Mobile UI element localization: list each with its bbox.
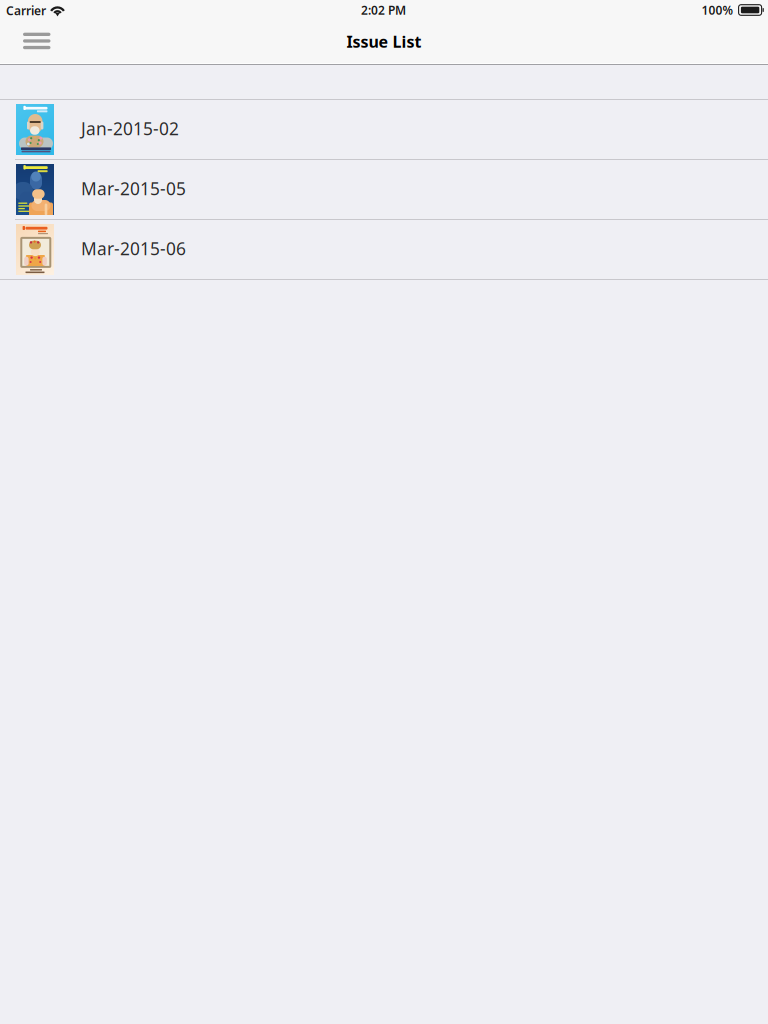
staticText: Mar-2015-06 bbox=[81, 237, 186, 260]
staticText: Carrier bbox=[6, 2, 46, 18]
button[interactable]: Menu bbox=[13, 20, 60, 62]
staticText: Mar-2015-05 bbox=[81, 177, 186, 200]
staticText: Issue List bbox=[346, 31, 421, 52]
staticText: 2:02 PM bbox=[361, 2, 406, 18]
button[interactable]: Jan-2015-02 bbox=[0, 100, 768, 160]
staticText: 100% bbox=[702, 2, 734, 18]
button[interactable]: Mar-2015-05 bbox=[0, 160, 768, 220]
staticText: Jan-2015-02 bbox=[81, 117, 179, 140]
button[interactable]: Mar-2015-06 bbox=[0, 220, 768, 280]
